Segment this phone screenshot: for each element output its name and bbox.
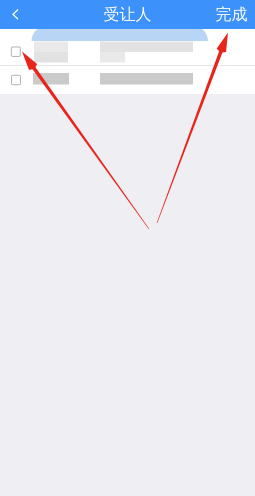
button[interactable]: 完成 [208, 0, 255, 29]
button[interactable]: Back [0, 0, 31, 29]
button[interactable]: Select [0, 67, 31, 93]
staticText: 受让人 [103, 5, 151, 24]
staticText: 完成 [215, 5, 247, 24]
button[interactable]: Select [0, 39, 31, 65]
